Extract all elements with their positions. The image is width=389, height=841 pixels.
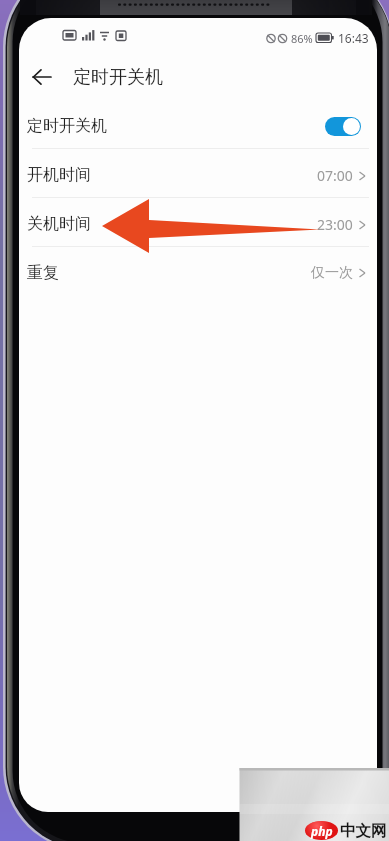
staticText: 中文网 (340, 821, 387, 841)
staticText: 07:00 (317, 166, 353, 185)
button[interactable]: 开机时间 (19, 152, 377, 198)
staticText: 重复 (27, 263, 59, 283)
button[interactable]: 重复 (19, 250, 377, 296)
staticText: 关机时间 (27, 214, 91, 234)
staticText: 开机时间 (27, 165, 91, 185)
staticText: 16:43 (338, 30, 369, 46)
staticText: 86% (291, 31, 313, 46)
button[interactable]: 定时开关机 (19, 103, 377, 149)
button[interactable]: 关机时间 (19, 201, 377, 247)
staticText: 定时开关机 (27, 116, 107, 136)
staticText: php (311, 823, 333, 839)
staticText: 定时开关机 (73, 66, 163, 89)
staticText: 仅一次 (311, 264, 353, 282)
staticText: 23:00 (317, 215, 353, 234)
button[interactable]: Back (25, 60, 59, 94)
